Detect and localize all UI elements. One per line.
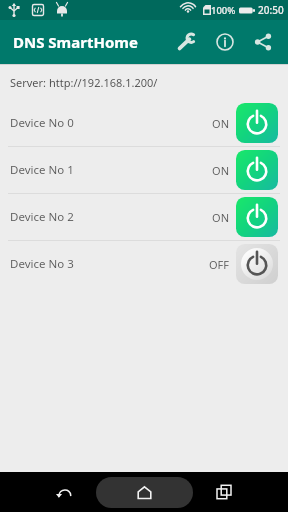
button[interactable]: Home <box>96 477 193 508</box>
staticText: OFF <box>208 257 229 272</box>
button[interactable]: Share <box>244 23 282 61</box>
button[interactable]: Turn off Device No 2 <box>236 197 278 237</box>
staticText: ON <box>212 210 229 225</box>
staticText: Device No 0 <box>10 115 74 131</box>
staticText: 20:50 <box>258 3 284 17</box>
button[interactable]: Settings <box>168 23 206 61</box>
staticText: Server: http://192.168.1.200/ <box>10 75 158 90</box>
button[interactable]: Turn on Device No 3 <box>236 244 278 284</box>
button[interactable]: Back <box>48 476 80 508</box>
button[interactable]: Info <box>206 23 244 61</box>
button[interactable]: Turn off Device No 0 <box>236 103 278 143</box>
staticText: Device No 1 <box>10 162 74 178</box>
staticText: 100% <box>211 4 236 17</box>
staticText: DNS SmartHome <box>13 32 138 52</box>
staticText: Device No 3 <box>10 256 74 272</box>
button[interactable]: Device No 1 <box>0 147 288 193</box>
button[interactable]: Device No 3 <box>0 241 288 287</box>
staticText: ON <box>212 163 229 178</box>
button[interactable]: Device No 0 <box>0 100 288 146</box>
staticText: ON <box>212 116 229 131</box>
button[interactable]: Turn off Device No 1 <box>236 150 278 190</box>
button[interactable]: Recent apps <box>208 476 240 508</box>
staticText: Device No 2 <box>10 209 74 225</box>
button[interactable]: Device No 2 <box>0 194 288 240</box>
